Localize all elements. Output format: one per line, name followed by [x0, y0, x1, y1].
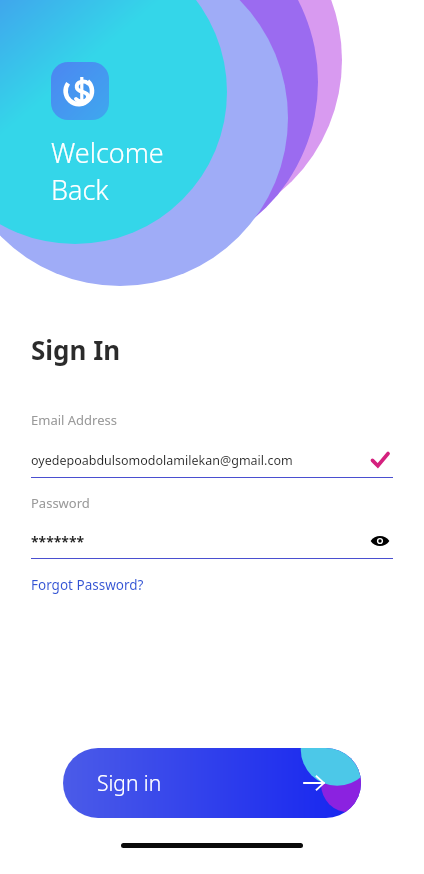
- staticText: Password: [31, 494, 90, 512]
- staticText: oyedepoabdulsomodolamilekan@gmail.com: [31, 452, 367, 469]
- staticText: Back: [51, 171, 109, 208]
- button[interactable]: Forgot Password?: [31, 576, 144, 594]
- staticText: Welcome: [51, 134, 164, 171]
- staticText: Email Address: [31, 411, 117, 429]
- staticText: *******: [31, 532, 367, 551]
- staticText: Forgot Password?: [31, 576, 144, 594]
- staticText: Sign in: [97, 769, 162, 798]
- staticText: Sign In: [31, 332, 121, 367]
- button[interactable]: Email valid: [367, 447, 393, 473]
- button[interactable]: Show password: [367, 528, 393, 554]
- button[interactable]: Sign in: [63, 748, 361, 818]
